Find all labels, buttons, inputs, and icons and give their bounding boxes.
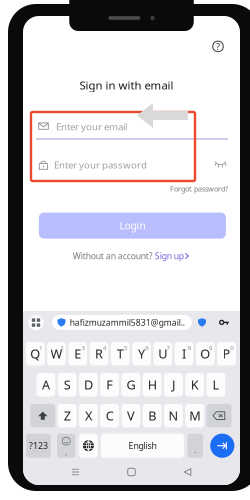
button[interactable]: H [143, 373, 162, 396]
staticText: 1 [39, 343, 43, 352]
staticText: B [148, 407, 156, 424]
staticText: Sign in with email [79, 77, 173, 93]
staticText: K [191, 376, 199, 393]
staticText: L [212, 376, 219, 393]
button[interactable]: , [57, 434, 75, 458]
staticText: F [106, 376, 113, 393]
button[interactable]: hafizmuzammil5831@gmail.. [52, 315, 192, 330]
button[interactable]: Z [58, 404, 77, 427]
staticText: S [64, 376, 71, 393]
staticText: Forgot password? [170, 184, 228, 194]
staticText: Y [138, 345, 145, 362]
staticText: M [189, 407, 200, 424]
staticText: W [50, 345, 62, 362]
button[interactable]: Show password [214, 161, 226, 168]
button[interactable]: Recents [71, 468, 79, 476]
button[interactable]: Enter [209, 434, 236, 458]
button[interactable]: C [100, 404, 119, 427]
staticText: D [84, 376, 93, 393]
button[interactable]: Forgot password? [170, 184, 228, 194]
button[interactable]: Login [39, 213, 226, 239]
button[interactable]: K [185, 373, 204, 396]
staticText: 6 [145, 343, 149, 352]
staticText: O [200, 345, 210, 362]
button[interactable]: U [153, 342, 172, 365]
staticText: N [168, 407, 178, 424]
staticText: C [106, 407, 114, 424]
button[interactable]: L [206, 373, 225, 396]
staticText: hafizmuzammil5831@gmail.. [70, 317, 185, 328]
staticText: E [74, 345, 81, 362]
button[interactable]: Back [184, 468, 192, 476]
staticText: U [158, 345, 167, 362]
button[interactable]: T [111, 342, 130, 365]
staticText: Enter your password [54, 158, 147, 171]
button[interactable]: S [58, 373, 77, 396]
staticText: R [95, 345, 103, 362]
button[interactable]: Autofill [198, 318, 206, 327]
staticText: Enter your email [56, 120, 127, 133]
staticText: Z [64, 407, 71, 424]
button[interactable]: Switch keyboard [28, 315, 44, 331]
staticText: A [42, 376, 50, 393]
button[interactable]: Sign up [155, 250, 189, 262]
staticText: 4 [103, 343, 107, 352]
staticText: P [222, 345, 230, 362]
staticText: 8 [188, 343, 192, 352]
button[interactable]: ?123 [26, 434, 51, 458]
staticText: Sign up [155, 250, 184, 262]
button[interactable]: W [47, 342, 66, 365]
button[interactable]: F [100, 373, 119, 396]
staticText: H [148, 376, 157, 393]
staticText: 9 [209, 343, 213, 352]
staticText: 2 [60, 343, 64, 352]
button[interactable]: M [185, 404, 204, 427]
staticText: 5 [124, 343, 128, 352]
button[interactable] [79, 434, 98, 458]
button[interactable]: D [79, 373, 98, 396]
staticText: X [85, 407, 92, 424]
button[interactable]: . [187, 434, 203, 458]
staticText: English [128, 440, 156, 452]
staticText: I [182, 345, 186, 362]
staticText: Without an account? [73, 250, 155, 262]
staticText: ?123 [29, 440, 48, 452]
button[interactable]: B [143, 404, 162, 427]
staticText: 3 [82, 343, 86, 352]
button[interactable]: Passwords [219, 318, 229, 327]
button[interactable]: J [164, 373, 183, 396]
staticText: 7 [167, 343, 171, 352]
button[interactable]: N [164, 404, 183, 427]
button[interactable]: Y [132, 342, 151, 365]
button[interactable] [30, 404, 55, 427]
button[interactable]: Help [211, 40, 224, 53]
button[interactable]: E [68, 342, 87, 365]
staticText: T [117, 345, 124, 362]
button[interactable]: English [101, 434, 184, 458]
button[interactable]: P [217, 342, 236, 365]
staticText: , [65, 447, 67, 457]
staticText: V [127, 407, 135, 424]
staticText: G [126, 376, 135, 393]
button[interactable]: X [79, 404, 98, 427]
button[interactable] [206, 404, 231, 427]
button[interactable]: Home [128, 468, 135, 476]
button[interactable]: G [121, 373, 140, 396]
button[interactable]: R [90, 342, 108, 365]
staticText: J [172, 376, 175, 393]
staticText: Login [119, 219, 145, 232]
staticText: . [194, 444, 196, 456]
button[interactable]: Q [26, 342, 45, 365]
button[interactable]: V [121, 404, 140, 427]
staticText: 0 [230, 343, 234, 352]
button[interactable]: A [36, 373, 55, 396]
button[interactable]: I [175, 342, 193, 365]
staticText: ? [216, 40, 220, 53]
staticText: Q [30, 345, 40, 362]
button[interactable]: O [196, 342, 215, 365]
